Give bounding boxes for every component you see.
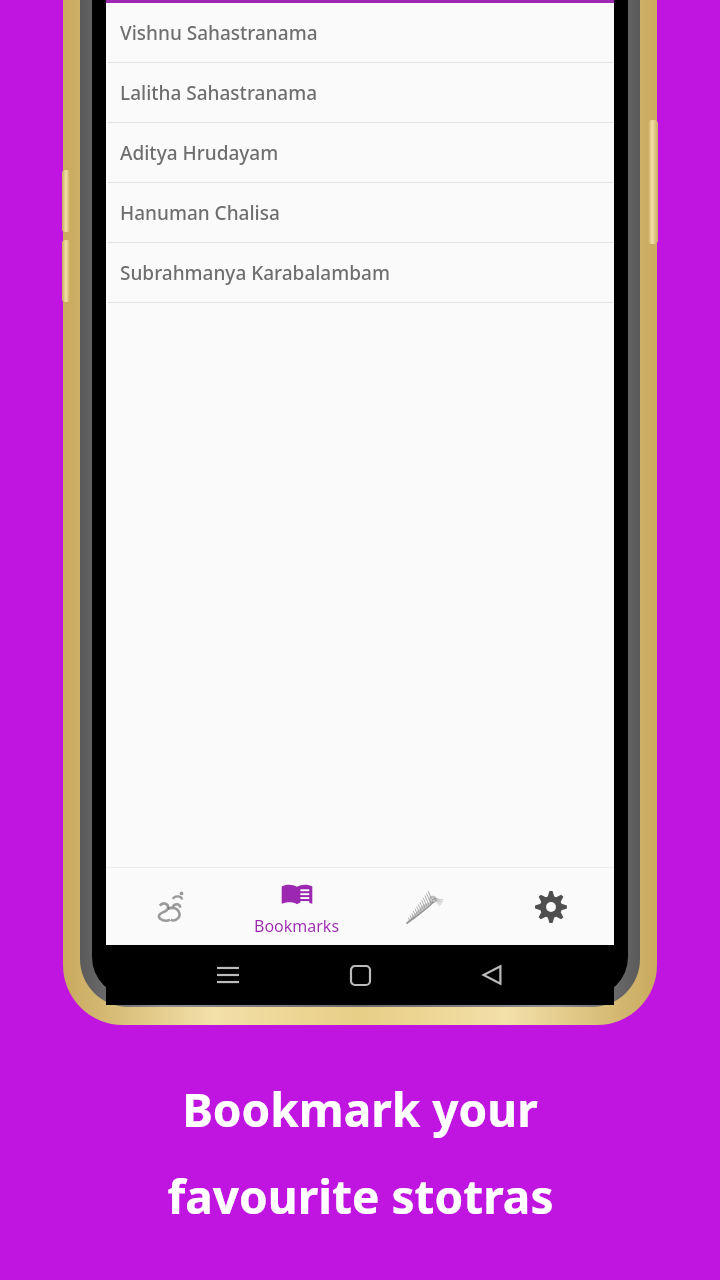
button[interactable]: Back [472,955,512,995]
staticText: Hanuman Chalisa [120,200,280,226]
button[interactable]: Stotras [360,868,487,945]
button[interactable]: Om [106,868,233,945]
button[interactable]: Bookmarks [233,868,360,945]
staticText: favourite stotras [167,1165,554,1228]
button[interactable]: Hanuman Chalisa [106,183,614,243]
button[interactable]: Lalitha Sahastranama [106,63,614,123]
staticText: Bookmarks [254,915,340,937]
button[interactable]: Subrahmanya Karabalambam [106,243,614,303]
button[interactable]: Recent apps [208,955,248,995]
staticText: Aditya Hrudayam [120,140,279,166]
button[interactable]: Aditya Hrudayam [106,123,614,183]
staticText: Vishnu Sahastranama [120,20,318,46]
button[interactable]: Vishnu Sahastranama [106,3,614,63]
staticText: Subrahmanya Karabalambam [120,260,390,286]
staticText: Lalitha Sahastranama [120,80,318,106]
button[interactable]: Settings [487,868,614,945]
button[interactable]: Home [340,955,380,995]
staticText: Bookmark your [182,1078,538,1141]
